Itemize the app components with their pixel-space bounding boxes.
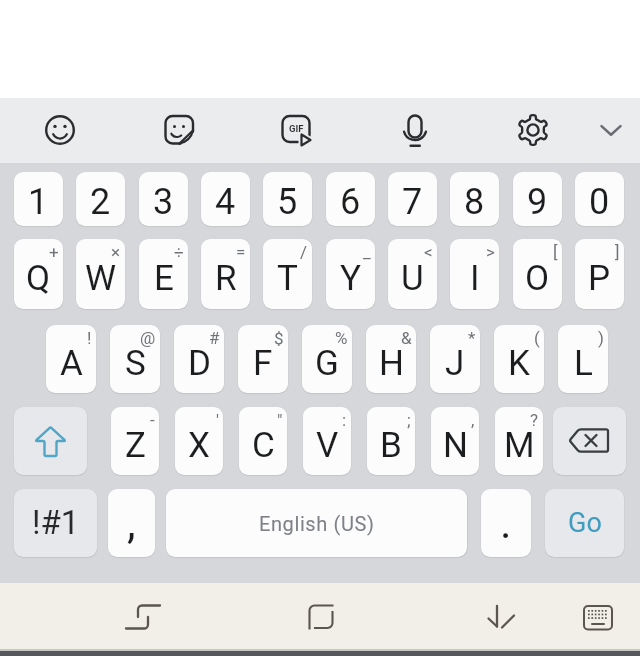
staticText: H	[379, 343, 404, 384]
staticText: :	[342, 410, 347, 430]
button[interactable]: 3	[139, 172, 188, 226]
staticText: .	[500, 497, 512, 549]
staticText: English (US)	[259, 512, 375, 535]
staticText: Go	[568, 507, 602, 539]
button[interactable]: *	[430, 325, 480, 393]
button[interactable]: $	[238, 325, 288, 393]
staticText: 2	[90, 181, 111, 223]
staticText: 5	[277, 181, 298, 223]
staticText: U	[401, 258, 424, 299]
staticText: GIF	[289, 123, 304, 134]
staticText: A	[60, 343, 83, 384]
button[interactable]: .	[481, 489, 531, 557]
button[interactable]: <	[388, 239, 437, 309]
button[interactable]: 2	[76, 172, 125, 226]
button[interactable]: '	[175, 407, 223, 475]
staticText: 4	[215, 181, 236, 223]
button[interactable]: ,	[431, 407, 479, 475]
button[interactable]: Go	[545, 489, 624, 557]
button[interactable]: !	[46, 325, 96, 393]
button[interactable]	[272, 106, 320, 154]
staticText: E	[154, 258, 174, 299]
staticText: 9	[527, 181, 548, 223]
button[interactable]	[573, 594, 621, 642]
staticText: -	[150, 410, 155, 430]
button[interactable]: &	[366, 325, 416, 393]
staticText: J	[445, 343, 465, 384]
staticText: $	[274, 328, 284, 348]
button[interactable]	[297, 593, 345, 641]
staticText: R	[215, 258, 237, 299]
button[interactable]: @	[110, 325, 160, 393]
staticText: *	[468, 328, 476, 348]
staticText: &	[401, 328, 412, 348]
button[interactable]: 5	[263, 172, 312, 226]
button[interactable]: :	[303, 407, 351, 475]
button[interactable]: !#1	[14, 489, 97, 557]
button[interactable]	[14, 407, 87, 475]
button[interactable]: =	[201, 239, 250, 309]
button[interactable]: )	[558, 325, 608, 393]
staticText: B	[380, 425, 402, 466]
staticText: N	[443, 425, 468, 466]
staticText: V	[316, 425, 339, 466]
staticText: 1	[28, 181, 49, 223]
button[interactable]: 6	[326, 172, 375, 226]
button[interactable]: ]	[575, 239, 624, 309]
button[interactable]	[155, 106, 203, 154]
button[interactable]: #	[174, 325, 224, 393]
button[interactable]: (	[494, 325, 544, 393]
button[interactable]: [	[513, 239, 562, 309]
button[interactable]: 1	[14, 172, 63, 226]
button[interactable]: 8	[450, 172, 499, 226]
staticText: D	[188, 343, 211, 384]
staticText: "	[277, 410, 283, 430]
staticText: M	[504, 425, 535, 466]
staticText: X	[188, 425, 210, 466]
button[interactable]: "	[239, 407, 287, 475]
button[interactable]	[36, 106, 84, 154]
staticText: G	[315, 343, 339, 384]
button[interactable]: 9	[513, 172, 562, 226]
button[interactable]: 7	[388, 172, 437, 226]
staticText: !	[87, 328, 92, 348]
button[interactable]: -	[111, 407, 159, 475]
staticText: I	[470, 258, 480, 299]
button[interactable]: +	[14, 239, 63, 309]
staticText: T	[277, 258, 298, 299]
staticText: ÷	[174, 242, 184, 262]
staticText: F	[253, 343, 273, 384]
staticText: 0	[589, 181, 610, 223]
button[interactable]	[119, 593, 167, 641]
staticText: 3	[153, 181, 174, 223]
button[interactable]: 0	[575, 172, 624, 226]
button[interactable]: ?	[495, 407, 543, 475]
button[interactable]: English (US)	[166, 489, 467, 557]
staticText: P	[588, 258, 611, 299]
staticText: ,	[127, 497, 136, 549]
button[interactable]: 4	[201, 172, 250, 226]
button[interactable]: ×	[76, 239, 125, 309]
staticText: %	[335, 328, 348, 348]
button[interactable]	[553, 407, 626, 475]
staticText: L	[574, 343, 593, 384]
staticText: +	[49, 242, 59, 262]
button[interactable]	[591, 106, 631, 154]
button[interactable]: ÷	[139, 239, 188, 309]
staticText: W	[85, 258, 117, 299]
button[interactable]: /	[263, 239, 312, 309]
staticText: 6	[340, 181, 361, 223]
button[interactable]	[476, 593, 524, 641]
staticText: <	[424, 242, 433, 262]
button[interactable]: %	[302, 325, 352, 393]
button[interactable]: ;	[367, 407, 415, 475]
staticText: =	[236, 242, 246, 262]
button[interactable]: _	[326, 239, 375, 309]
button[interactable]	[509, 106, 557, 154]
staticText: C	[252, 425, 275, 466]
staticText: 8	[464, 181, 485, 223]
button[interactable]: ,	[108, 489, 155, 557]
button[interactable]: >	[450, 239, 499, 309]
staticText: [	[553, 242, 558, 262]
button[interactable]	[391, 106, 439, 154]
